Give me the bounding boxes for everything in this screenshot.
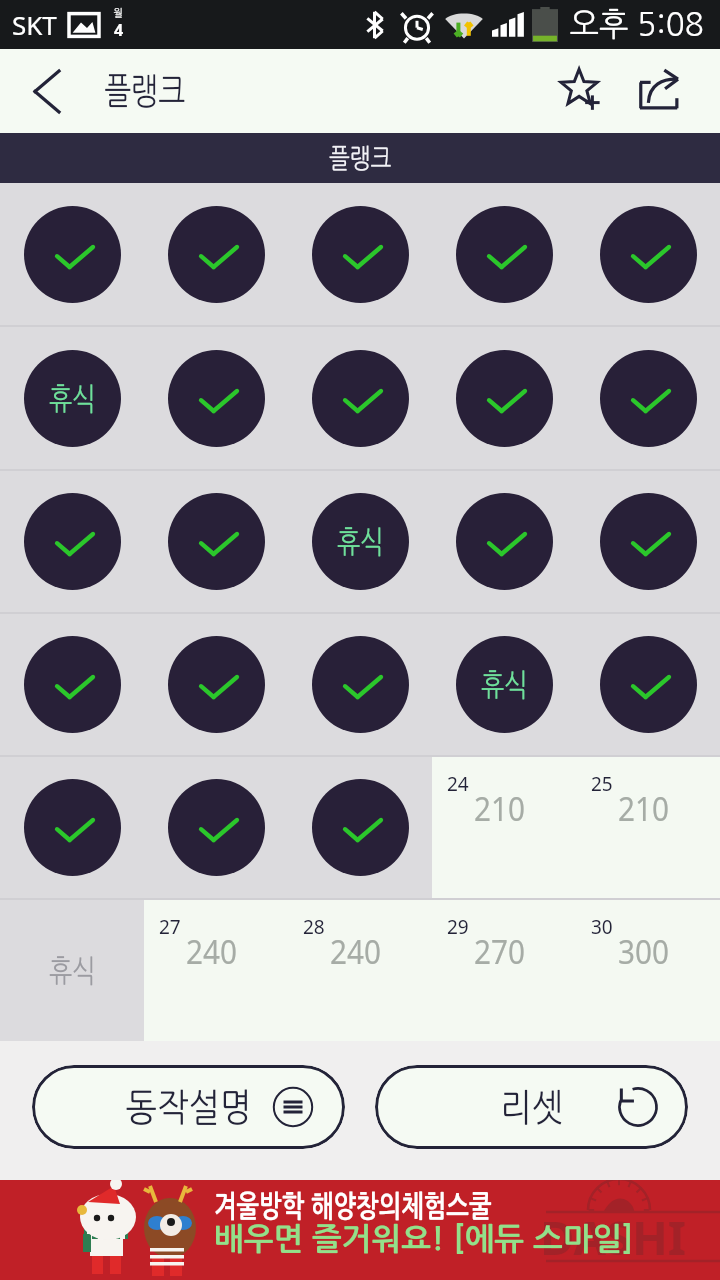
button[interactable] bbox=[576, 614, 720, 755]
staticText: 300 bbox=[618, 929, 669, 974]
button[interactable]: 동작설명 bbox=[32, 1065, 345, 1149]
staticText: 28 bbox=[303, 914, 325, 940]
button[interactable]: 24 bbox=[432, 757, 576, 898]
staticText: 리셋 bbox=[500, 1088, 564, 1126]
staticText: 25 bbox=[591, 771, 613, 797]
button[interactable] bbox=[0, 471, 144, 612]
button[interactable]: Share bbox=[620, 49, 698, 133]
button[interactable] bbox=[144, 471, 288, 612]
staticText: 30 bbox=[591, 914, 613, 940]
staticText: 배우면 즐거워요! [에듀 스마일] bbox=[214, 1224, 634, 1255]
button[interactable]: 28 bbox=[288, 900, 432, 1041]
button[interactable]: Back bbox=[0, 49, 94, 133]
staticText: 휴식 bbox=[337, 526, 384, 557]
button[interactable]: 휴식 bbox=[0, 900, 144, 1041]
button[interactable]: 29 bbox=[432, 900, 576, 1041]
button[interactable] bbox=[432, 327, 576, 469]
staticText: 월 bbox=[114, 8, 123, 19]
staticText: 플랭크 bbox=[104, 73, 186, 109]
button[interactable] bbox=[288, 614, 432, 755]
button[interactable]: 30 bbox=[576, 900, 720, 1041]
button[interactable] bbox=[144, 614, 288, 755]
button[interactable] bbox=[144, 183, 288, 325]
button[interactable] bbox=[288, 757, 432, 898]
button[interactable]: 휴식 bbox=[432, 614, 576, 755]
button[interactable] bbox=[0, 183, 144, 325]
button[interactable] bbox=[144, 327, 288, 469]
staticText: 29 bbox=[447, 914, 469, 940]
button[interactable]: 25 bbox=[576, 757, 720, 898]
button[interactable] bbox=[0, 757, 144, 898]
staticText: 24 bbox=[447, 771, 469, 797]
staticText: 휴식 bbox=[481, 669, 528, 700]
staticText: 겨울방학 해양창의체험스쿨 bbox=[214, 1192, 492, 1222]
staticText: 210 bbox=[474, 786, 525, 831]
button[interactable]: 휴식 bbox=[0, 327, 144, 469]
button[interactable]: 리셋 bbox=[375, 1065, 688, 1149]
button[interactable] bbox=[288, 327, 432, 469]
staticText: 휴식 bbox=[49, 955, 96, 986]
staticText: 4 bbox=[114, 19, 124, 41]
staticText: 240 bbox=[330, 929, 381, 974]
button[interactable] bbox=[576, 327, 720, 469]
staticText: 27 bbox=[159, 914, 181, 940]
button[interactable] bbox=[288, 183, 432, 325]
button[interactable] bbox=[0, 614, 144, 755]
staticText: 플랭크 bbox=[329, 145, 392, 172]
staticText: 240 bbox=[186, 929, 237, 974]
button[interactable]: 휴식 bbox=[288, 471, 432, 612]
button[interactable]: Add to favourites bbox=[542, 49, 620, 133]
button[interactable] bbox=[576, 471, 720, 612]
staticText: 동작설명 bbox=[126, 1088, 251, 1126]
button[interactable] bbox=[432, 183, 576, 325]
button[interactable] bbox=[576, 183, 720, 325]
staticText: DASHIN bbox=[540, 1205, 720, 1280]
staticText: 270 bbox=[474, 929, 525, 974]
button[interactable] bbox=[432, 471, 576, 612]
button[interactable] bbox=[144, 757, 288, 898]
staticText: 210 bbox=[618, 786, 669, 831]
button[interactable]: 27 bbox=[144, 900, 288, 1041]
staticText: 오후 5:08 bbox=[569, 8, 704, 41]
staticText: SKT bbox=[12, 7, 57, 42]
staticText: 휴식 bbox=[49, 383, 96, 414]
